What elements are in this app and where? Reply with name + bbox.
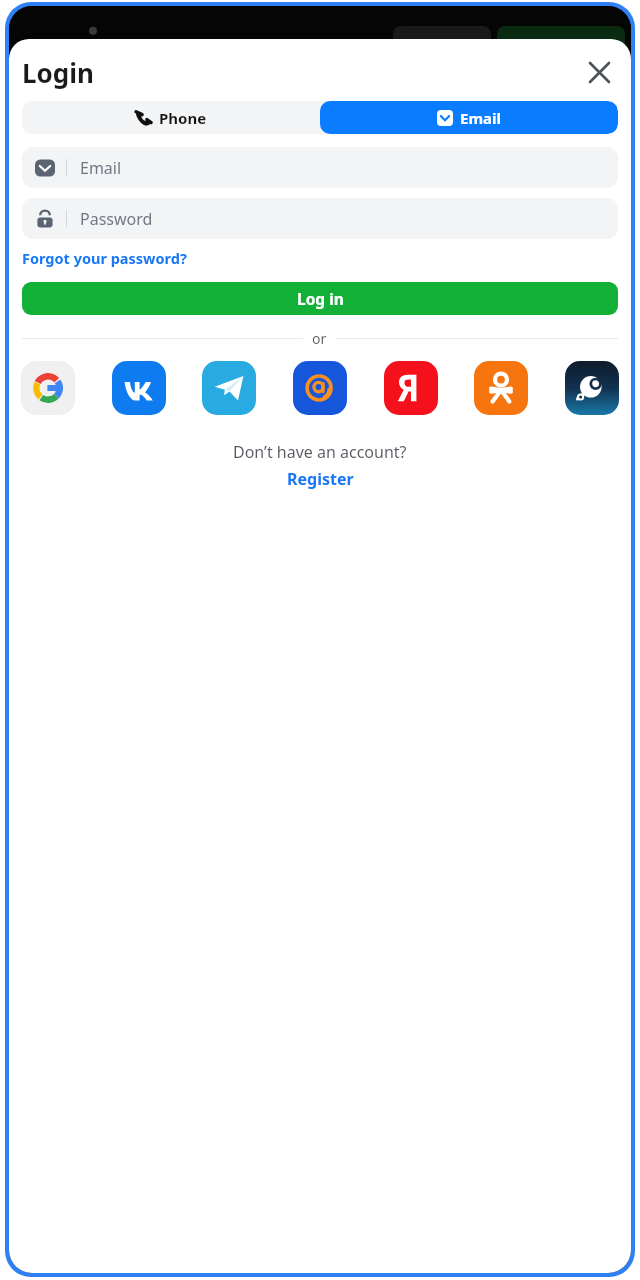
staticText: Phone xyxy=(159,108,207,128)
button[interactable]: Password xyxy=(22,198,618,239)
button[interactable]: Sign in with Telegram xyxy=(202,361,256,415)
button[interactable]: Close xyxy=(580,53,618,91)
button[interactable]: Email xyxy=(320,101,618,134)
button[interactable]: Sign in with Steam xyxy=(565,361,619,415)
button[interactable]: Log in xyxy=(22,282,618,315)
button[interactable]: Forgot your password? xyxy=(22,248,187,268)
staticText: Email xyxy=(460,108,501,128)
button[interactable]: Email xyxy=(22,147,618,188)
staticText: Password xyxy=(80,208,153,230)
button[interactable]: Register xyxy=(287,468,354,490)
button[interactable]: Sign in with Google xyxy=(21,361,75,415)
staticText: Don’t have an account? xyxy=(233,441,407,463)
button[interactable]: Sign in with Mail.ru xyxy=(293,361,347,415)
button[interactable]: Phone xyxy=(22,101,320,134)
staticText: Log in xyxy=(297,288,344,309)
button[interactable]: Sign in with VK xyxy=(112,361,166,415)
staticText: or xyxy=(312,329,327,348)
staticText: Forgot your password? xyxy=(22,248,187,268)
button[interactable]: Sign in with Odnoklassniki xyxy=(474,361,528,415)
staticText: Email xyxy=(80,157,122,179)
button[interactable]: Sign in with Yandex xyxy=(384,361,438,415)
staticText: Login xyxy=(22,55,94,90)
staticText: Register xyxy=(287,468,354,490)
